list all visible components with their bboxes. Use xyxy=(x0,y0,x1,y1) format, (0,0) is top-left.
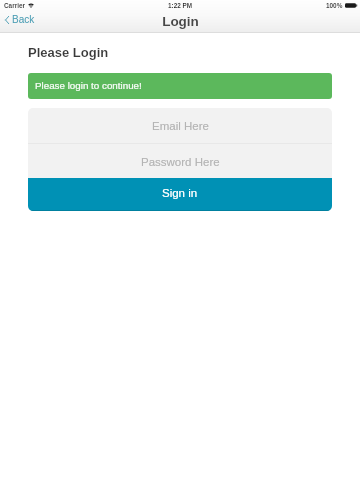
other: Back xyxy=(5,16,9,24)
button[interactable]: Sign in xyxy=(28,178,332,211)
staticText: Please Login xyxy=(28,45,109,60)
staticText: Password Here xyxy=(141,156,220,169)
staticText: 100% xyxy=(326,2,343,9)
staticText: Carrier xyxy=(4,2,25,9)
staticText: Back xyxy=(12,14,35,25)
staticText: Sign in xyxy=(162,187,198,200)
button[interactable]: Please login to continue! xyxy=(28,73,332,99)
button[interactable]: Password Here xyxy=(28,144,332,178)
staticText: Login xyxy=(162,14,199,29)
staticText: Email Here xyxy=(152,120,209,133)
button[interactable]: Back xyxy=(3,12,37,27)
button[interactable]: Email Here xyxy=(28,108,332,143)
staticText: 1:22 PM xyxy=(168,2,193,9)
staticText: Please login to continue! xyxy=(35,80,142,91)
